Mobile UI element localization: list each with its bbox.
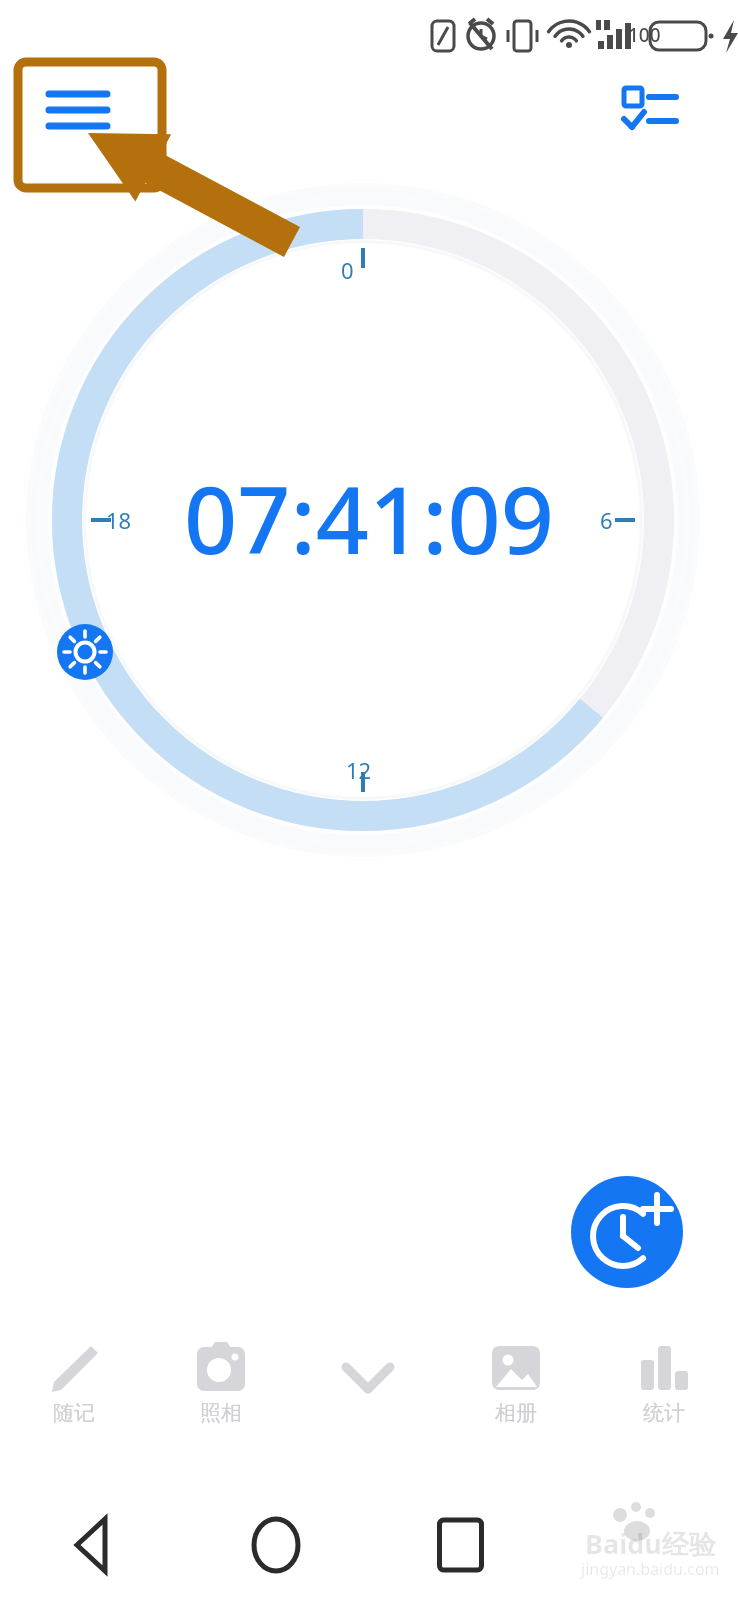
button[interactable]: Recents — [368, 1490, 553, 1600]
button[interactable]: 相册 — [442, 1340, 590, 1426]
staticText: 12 — [346, 755, 372, 785]
button[interactable]: 照相 — [147, 1340, 294, 1426]
staticText: 6 — [600, 505, 613, 535]
button[interactable]: Task list — [608, 78, 692, 142]
staticText: 随记 — [53, 1400, 95, 1426]
button[interactable]: Add timer — [571, 1176, 683, 1288]
staticText: 统计 — [643, 1400, 685, 1426]
staticText: jingyan.baidu.com — [581, 1558, 720, 1580]
button[interactable]: Home — [184, 1490, 368, 1600]
staticText: 照相 — [200, 1400, 242, 1426]
button[interactable]: 随记 — [0, 1340, 147, 1426]
staticText: 0 — [341, 255, 354, 285]
button[interactable]: Back — [0, 1490, 184, 1600]
staticText: 相册 — [495, 1400, 537, 1426]
button[interactable]: Daytime — [57, 624, 113, 680]
button[interactable]: Menu — [36, 78, 120, 142]
staticText: Baidu经验 — [585, 1525, 716, 1562]
button[interactable]: Collapse — [294, 1340, 442, 1414]
staticText: 18 — [106, 505, 132, 535]
button[interactable]: 统计 — [590, 1340, 738, 1426]
staticText: 100 — [628, 22, 661, 48]
staticText: 07:41:09 — [184, 455, 554, 582]
